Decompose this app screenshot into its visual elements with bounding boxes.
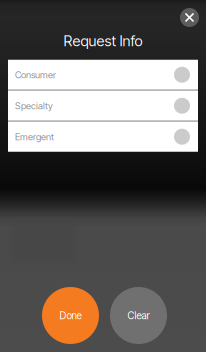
button[interactable]: Clear (110, 287, 167, 344)
staticText: Request Info (63, 32, 142, 50)
button[interactable]: Emergent (8, 122, 198, 152)
staticText: Done (59, 309, 81, 322)
button[interactable]: Done (42, 287, 99, 344)
button[interactable]: Consumer (8, 60, 198, 90)
button[interactable]: Close (180, 8, 199, 27)
staticText: Specialty (15, 100, 53, 111)
staticText: Emergent (15, 131, 54, 142)
staticText: Clear (127, 309, 149, 322)
button[interactable]: Specialty (8, 91, 198, 121)
staticText: Consumer (15, 69, 56, 80)
